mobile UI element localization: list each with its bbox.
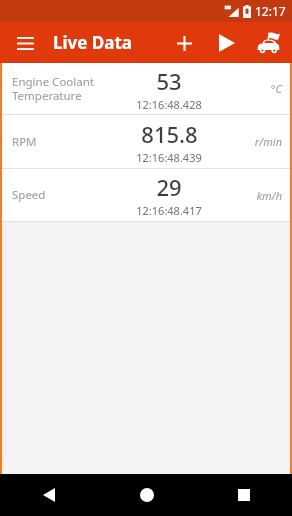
button[interactable]: Back (0, 474, 98, 516)
button[interactable]: Add (166, 25, 202, 61)
staticText: 12:17 (255, 3, 286, 19)
staticText: Speed (12, 187, 100, 203)
button[interactable]: Speed (2, 169, 290, 221)
staticText: km/h (256, 188, 282, 203)
staticText: 29 (156, 172, 182, 202)
staticText: 815.8 (141, 119, 198, 149)
button[interactable]: RPM (2, 115, 290, 168)
button[interactable]: Recent apps (195, 474, 292, 516)
staticText: 12:16:48.417 (136, 203, 202, 218)
button[interactable]: Open navigation menu (10, 28, 40, 58)
staticText: °C (270, 81, 282, 96)
button[interactable]: Race mode (250, 25, 286, 61)
button[interactable]: Start recording (209, 25, 245, 61)
staticText: 53 (156, 66, 182, 96)
staticText: Engine Coolant Temperature (12, 74, 100, 103)
staticText: RPM (12, 134, 100, 150)
staticText: 12:16:48.439 (136, 150, 202, 165)
button[interactable]: Home (98, 474, 195, 516)
button[interactable]: Engine Coolant Temperature (2, 63, 290, 114)
staticText: 12:16:48.428 (136, 97, 202, 112)
staticText: Live Data (53, 31, 133, 54)
staticText: r/min (254, 134, 282, 149)
